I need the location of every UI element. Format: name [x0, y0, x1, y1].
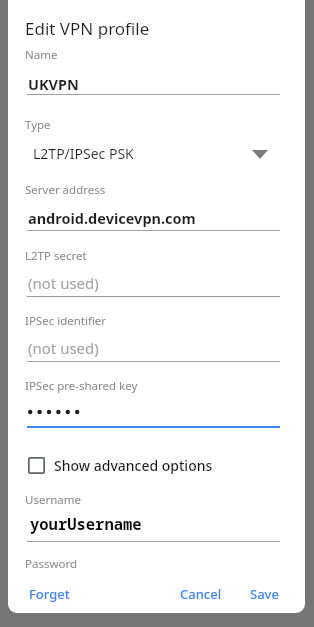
staticText: Edit VPN profile — [25, 17, 150, 40]
staticText: (not used) — [28, 273, 99, 293]
staticText: Forget — [29, 585, 70, 603]
button[interactable] — [25, 333, 282, 361]
button[interactable]: Show advanced options — [28, 450, 278, 480]
button[interactable] — [25, 268, 282, 296]
staticText: IPSec identifier — [25, 313, 107, 329]
other: Open type dropdown — [252, 150, 268, 159]
button[interactable] — [25, 510, 282, 540]
button[interactable]: L2TP/IPSec PSK — [25, 138, 282, 168]
staticText: Password — [25, 556, 78, 572]
button[interactable]: Forget — [18, 582, 80, 606]
staticText: Name — [25, 47, 58, 63]
staticText: L2TP/IPSec PSK — [33, 144, 134, 163]
staticText: Show advanced options — [54, 456, 213, 475]
staticText: Server address — [25, 182, 106, 198]
staticText: android.devicevpn.com — [28, 208, 196, 228]
staticText: Save — [250, 585, 279, 603]
staticText: L2TP secret — [25, 248, 87, 264]
button[interactable] — [25, 68, 282, 96]
staticText: Cancel — [180, 585, 222, 603]
staticText: yourUsername — [30, 513, 142, 534]
button[interactable] — [25, 203, 282, 231]
button[interactable] — [25, 398, 282, 426]
staticText: Type — [25, 117, 51, 133]
button[interactable]: Cancel — [173, 582, 228, 606]
staticText: IPSec pre-shared key — [25, 378, 138, 394]
staticText: (not used) — [28, 338, 99, 358]
button[interactable]: Save — [242, 582, 286, 606]
staticText: Username — [25, 492, 81, 508]
staticText: UKVPN — [28, 74, 79, 94]
